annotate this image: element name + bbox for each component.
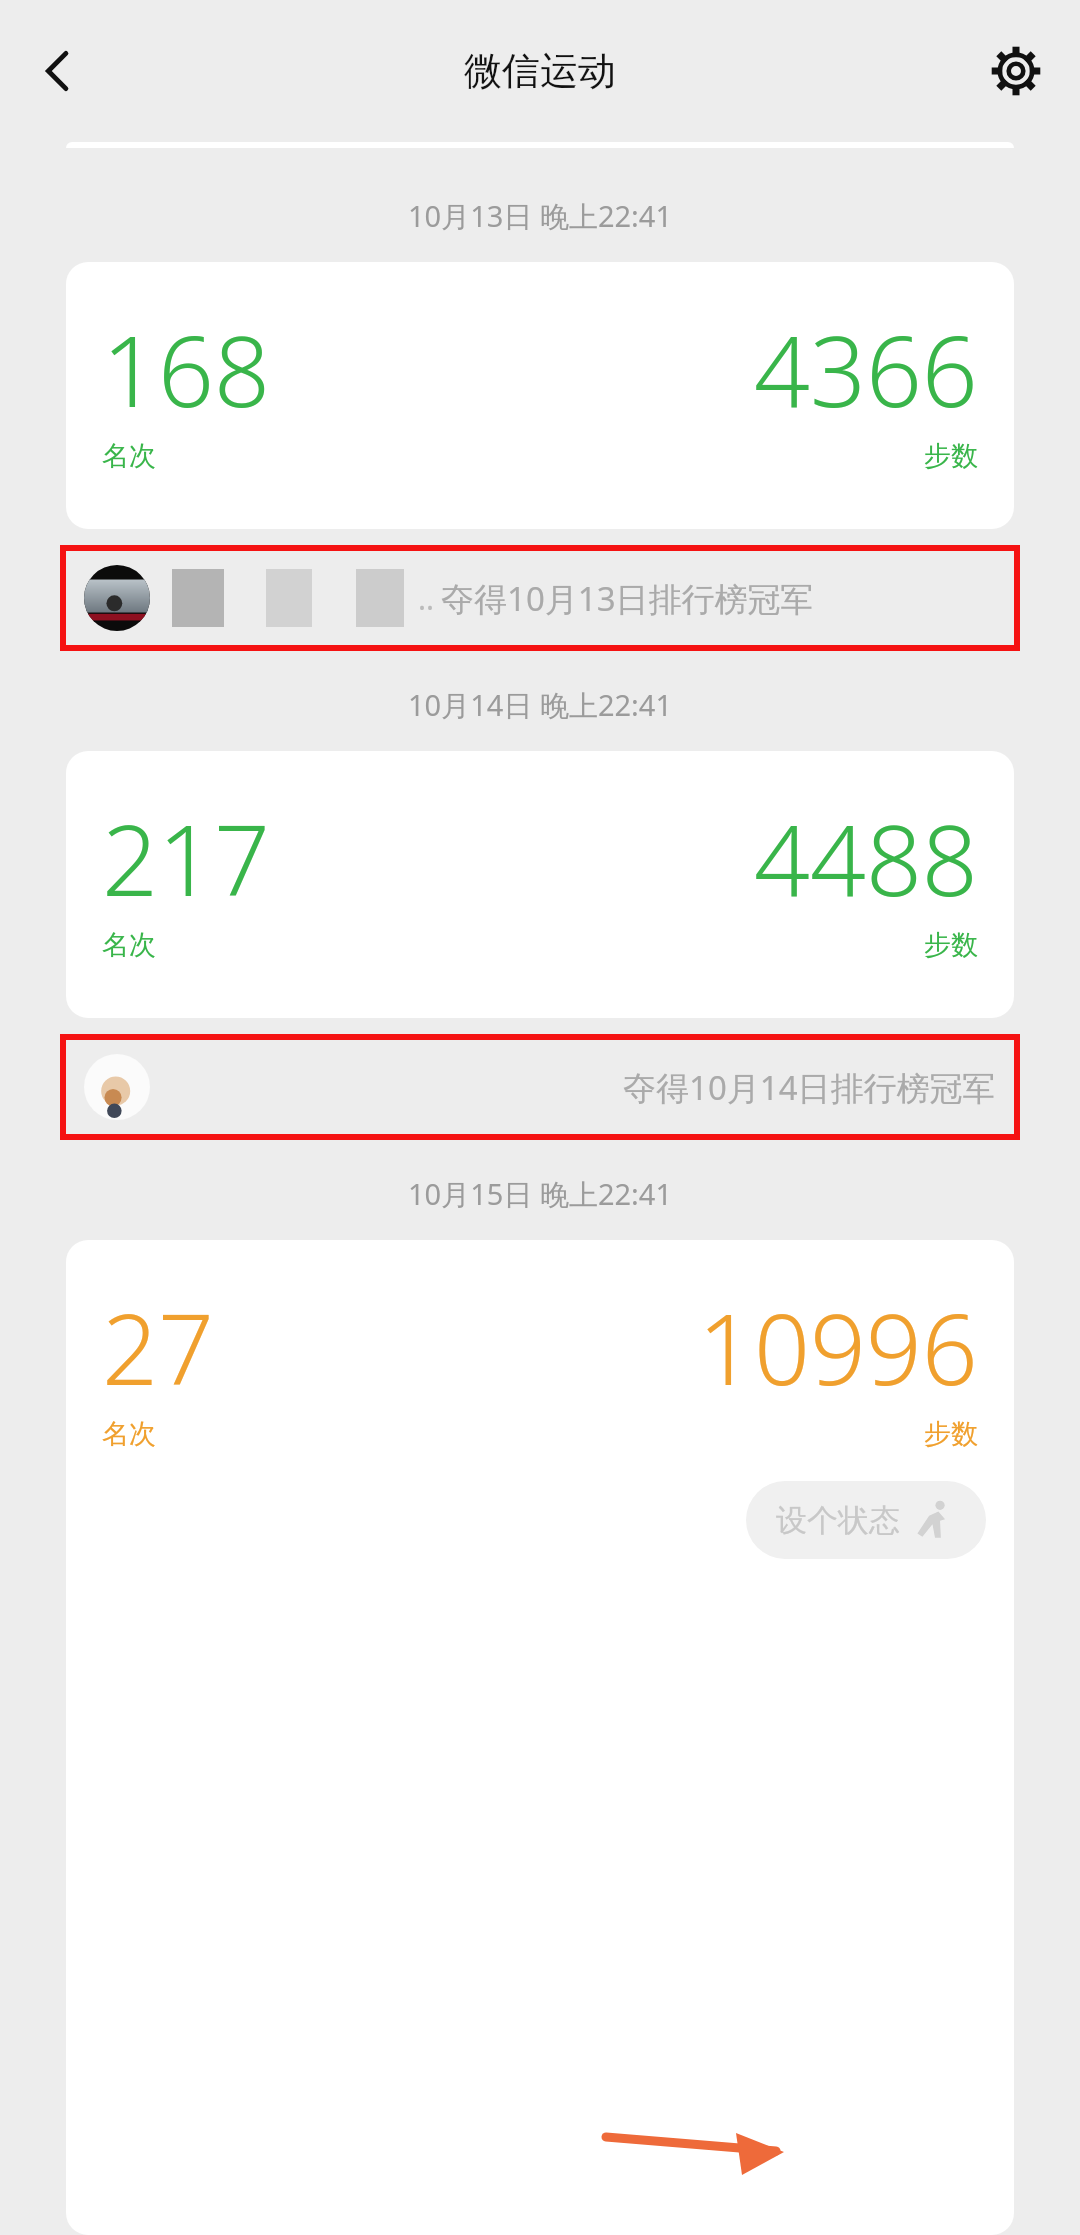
staticText: 10月13日 晚上22:41 [408,196,673,236]
staticText: 4488 [754,791,978,924]
staticText: 10月14日 晚上22:41 [408,685,673,725]
staticText: .. [418,578,435,619]
button[interactable]: 夺得10月14日排行榜冠军 [66,1040,1014,1134]
staticText: 27 [102,1280,214,1413]
staticText: 10996 [698,1280,978,1413]
staticText: 步数 [924,439,978,473]
staticText: 夺得10月14日排行榜冠军 [623,1065,996,1110]
staticText: 微信运动 [464,47,616,95]
staticText: 168 [102,302,270,435]
staticText: 217 [102,791,270,924]
button[interactable]: 217 [66,751,1014,1018]
staticText: 名次 [102,1417,156,1451]
staticText: 设个状态 [776,1501,900,1540]
button[interactable]: .. [66,551,1014,645]
button[interactable]: Settings [972,27,1060,115]
button[interactable]: 168 [66,262,1014,529]
staticText: 步数 [924,928,978,962]
staticText: 夺得10月13日排行榜冠军 [441,576,814,621]
button[interactable]: 设个状态 [746,1481,986,1559]
staticText: 名次 [102,439,156,473]
button[interactable]: 27 [66,1240,1014,2235]
button[interactable]: Back [14,27,102,115]
staticText: 步数 [924,1417,978,1451]
staticText: 名次 [102,928,156,962]
staticText: 10月15日 晚上22:41 [408,1174,673,1214]
staticText: 4366 [754,302,978,435]
